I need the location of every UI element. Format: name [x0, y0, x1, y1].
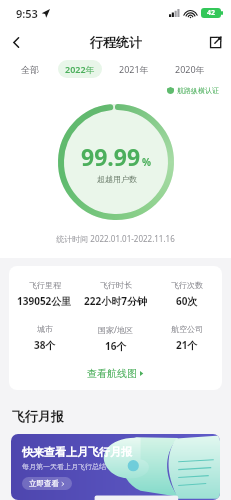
button[interactable]: 2020年 [168, 60, 212, 78]
staticText: 99.99 [81, 141, 141, 172]
button[interactable]: 全部 [14, 61, 46, 78]
button[interactable]: Back [0, 26, 32, 58]
staticText: 飞行月报 [12, 408, 64, 424]
staticText: 航空公司 [171, 324, 203, 334]
staticText: 139052公里 [17, 294, 72, 308]
staticText: 飞行时长 [100, 280, 132, 290]
staticText: 统计时间 2022.01.01-2022.11.16 [0, 233, 231, 244]
staticText: 超越用户数 [97, 174, 137, 184]
staticText: 16个 [105, 339, 127, 353]
staticText: 222小时7分钟 [84, 294, 147, 308]
button[interactable]: 2022年 [58, 60, 102, 78]
staticText: 38个 [34, 338, 56, 352]
staticText: 2021年 [119, 63, 149, 75]
staticText: 60次 [176, 294, 198, 308]
staticText: % [142, 155, 152, 169]
staticText: 9:53 [16, 6, 38, 21]
button[interactable]: 2021年 [112, 60, 156, 78]
staticText: 国家/地区 [98, 324, 133, 335]
button[interactable]: 查看航线图 [9, 367, 222, 380]
staticText: 2022年 [65, 63, 95, 75]
staticText: 2020年 [175, 63, 205, 75]
button[interactable]: 快来查看上月飞行月报 [11, 434, 220, 500]
staticText: 全部 [21, 64, 39, 75]
staticText: 城市 [37, 324, 53, 334]
staticText: 42 [207, 8, 216, 18]
staticText: 行程统计 [90, 34, 142, 50]
staticText: 飞行次数 [171, 280, 203, 290]
staticText: 21个 [176, 338, 198, 352]
button[interactable]: 立即查看 [22, 477, 72, 490]
staticText: 查看航线图 [87, 367, 137, 380]
staticText: 立即查看 [29, 479, 59, 488]
button[interactable]: 航路纵横认证 [167, 86, 219, 95]
staticText: 每月第一天看上月飞行总结 [22, 462, 106, 471]
button[interactable]: Share [199, 26, 231, 58]
staticText: 航路纵横认证 [177, 86, 219, 95]
staticText: 快来查看上月飞行月报 [22, 445, 132, 459]
staticText: 飞行里程 [29, 280, 61, 290]
